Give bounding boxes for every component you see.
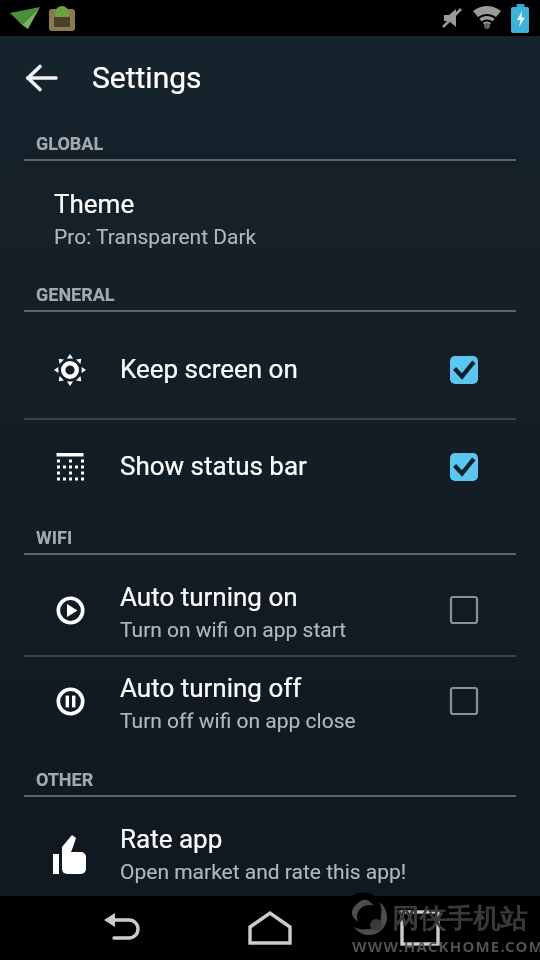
button[interactable]: Auto turning on <box>24 565 516 655</box>
staticText: Auto turning off <box>120 673 302 703</box>
staticText: Settings <box>92 60 202 95</box>
button[interactable]: Show status bar <box>24 419 516 515</box>
button[interactable]: Keep screen on <box>24 322 516 418</box>
button[interactable] <box>14 52 70 108</box>
staticText: OTHER <box>36 769 94 790</box>
button[interactable] <box>385 903 455 953</box>
staticText: Keep screen on <box>120 354 298 384</box>
staticText: WIFI <box>36 527 73 548</box>
staticText: Theme <box>54 189 135 219</box>
staticText: Rate app <box>120 824 223 854</box>
button[interactable] <box>235 903 305 953</box>
button[interactable]: Auto turning off <box>24 656 516 746</box>
staticText: Pro: Transparent Dark <box>54 225 257 250</box>
staticText: Open market and rate this app! <box>120 860 407 885</box>
staticText: 网侠手机站 <box>392 902 527 936</box>
button[interactable]: Rate app <box>24 807 516 896</box>
button[interactable] <box>85 903 155 953</box>
staticText: WWW.HACKHOME.COM <box>352 936 540 956</box>
staticText: Auto turning on <box>120 582 298 612</box>
staticText: Turn off wifi on app close <box>120 709 356 734</box>
staticText: GLOBAL <box>36 133 104 154</box>
staticText: GENERAL <box>36 284 115 305</box>
button[interactable]: Theme <box>24 170 516 270</box>
staticText: Show status bar <box>120 451 307 481</box>
staticText: Turn on wifi on app start <box>120 618 347 643</box>
